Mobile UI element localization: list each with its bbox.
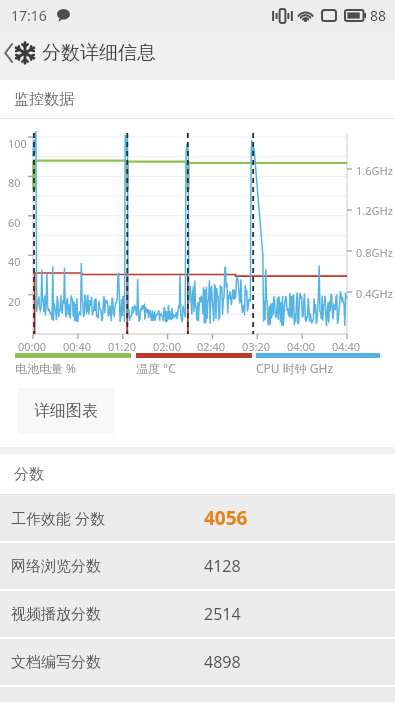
staticText: 0.8GHz	[356, 245, 393, 260]
staticText: 分数	[14, 465, 44, 484]
staticText: 视频播放分数	[11, 605, 101, 624]
staticText: 4898	[204, 651, 241, 673]
staticText: 00:40	[63, 339, 92, 354]
staticText: 17:16	[11, 6, 47, 25]
staticText: 监控数据	[14, 90, 74, 109]
staticText: 0.4GHz	[356, 286, 393, 301]
staticText: 100	[8, 136, 27, 151]
staticText: 04:40	[332, 339, 361, 354]
staticText: 40	[8, 254, 21, 269]
staticText: 1.6GHz	[356, 163, 393, 178]
staticText: 04:00	[287, 339, 316, 354]
staticText: 电池电量 %	[15, 360, 77, 376]
staticText: 4056	[204, 505, 248, 531]
staticText: 02:00	[153, 339, 182, 354]
staticText: 工作效能 分数	[11, 508, 105, 528]
button[interactable]: Back	[0, 31, 38, 75]
staticText: 分数详细信息	[42, 41, 156, 65]
staticText: 00:00	[18, 339, 47, 354]
staticText: CPU 时钟 GHz	[256, 360, 334, 376]
staticText: 01:20	[108, 339, 137, 354]
staticText: 02:40	[197, 339, 226, 354]
staticText: 2514	[204, 603, 241, 625]
staticText: 文档编写分数	[11, 653, 101, 672]
staticText: 03:20	[242, 339, 271, 354]
button[interactable]: 工作效能 分数	[0, 495, 395, 541]
button[interactable]: 网络浏览分数	[0, 543, 395, 589]
staticText: 60	[8, 215, 21, 230]
staticText: 88	[370, 6, 387, 25]
staticText: 20	[8, 294, 21, 309]
button[interactable]: 视频播放分数	[0, 591, 395, 637]
staticText: 4128	[204, 555, 241, 577]
staticText: 温度 °C	[136, 360, 176, 376]
staticText: 网络浏览分数	[11, 557, 101, 576]
staticText: 1.2GHz	[356, 203, 393, 218]
button[interactable]: 详细图表	[17, 388, 115, 434]
button[interactable]: 文档编写分数	[0, 639, 395, 685]
staticText: 详细图表	[34, 401, 98, 421]
staticText: 80	[8, 175, 21, 190]
